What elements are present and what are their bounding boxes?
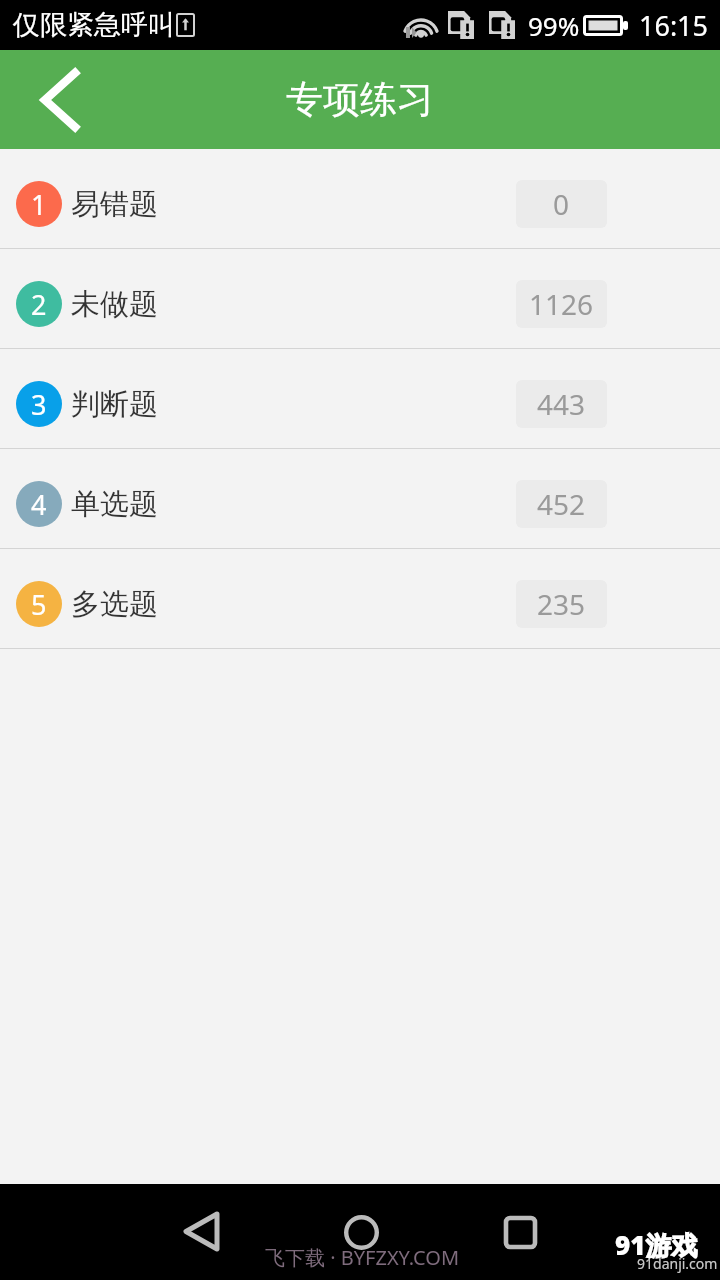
staticText: 91游戏: [615, 1227, 698, 1263]
staticText: 专项练习: [286, 76, 434, 123]
button[interactable]: Home: [320, 1192, 400, 1272]
staticText: 仅限紧急呼叫: [13, 8, 175, 42]
button[interactable]: Back: [0, 50, 108, 149]
button[interactable]: 1: [0, 149, 720, 249]
staticText: 判断题: [71, 386, 158, 423]
button[interactable]: 4: [0, 449, 720, 549]
staticText: 3: [31, 386, 47, 423]
staticText: 2: [31, 286, 47, 323]
button[interactable]: Recents: [480, 1192, 560, 1272]
staticText: 未做题: [71, 286, 158, 323]
button[interactable]: 5: [0, 549, 720, 649]
staticText: 易错题: [71, 186, 158, 223]
staticText: 4: [31, 486, 47, 523]
staticText: 99%: [528, 8, 580, 43]
staticText: 5: [31, 586, 47, 623]
staticText: 452: [537, 485, 586, 523]
staticText: 443: [537, 385, 586, 423]
staticText: 91danji.com: [637, 1254, 718, 1273]
staticText: 16:15: [639, 7, 709, 44]
staticText: 单选题: [71, 486, 158, 523]
button[interactable]: Back: [161, 1192, 241, 1272]
button[interactable]: 2: [0, 249, 720, 349]
staticText: 1: [31, 186, 47, 223]
staticText: 0: [553, 185, 570, 223]
staticText: 飞下载 · BYFZXY.COM: [265, 1244, 460, 1271]
button[interactable]: 3: [0, 349, 720, 449]
staticText: 多选题: [71, 586, 158, 623]
staticText: 1126: [529, 285, 594, 323]
staticText: 235: [537, 585, 586, 623]
